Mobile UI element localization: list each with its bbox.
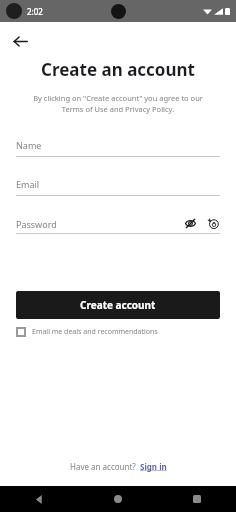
button[interactable]: Hide password xyxy=(184,217,197,230)
button[interactable]: Create account xyxy=(16,291,220,319)
button[interactable]: Home xyxy=(78,486,157,512)
button[interactable]: Suggest strong password xyxy=(207,217,220,230)
staticText: Name xyxy=(16,139,42,151)
staticText: Have an account? xyxy=(70,461,140,472)
button[interactable]: Sign in xyxy=(140,461,167,472)
button[interactable]: Name xyxy=(16,139,220,157)
button[interactable]: Back xyxy=(0,486,78,512)
button[interactable]: Recents xyxy=(157,486,236,512)
button[interactable]: Email me deals and recommendations xyxy=(16,327,220,337)
staticText: Password xyxy=(16,218,184,230)
button[interactable]: Email xyxy=(16,178,220,196)
staticText: Sign in xyxy=(140,461,167,472)
staticText: 2:02 xyxy=(27,6,43,17)
button[interactable]: Back xyxy=(6,27,34,55)
staticText: Create an account xyxy=(16,58,220,81)
staticText: By clicking on "Create account" you agre… xyxy=(22,93,214,114)
staticText: Create account xyxy=(80,298,156,312)
staticText: Email xyxy=(16,178,40,190)
staticText: Email me deals and recommendations xyxy=(32,327,158,337)
